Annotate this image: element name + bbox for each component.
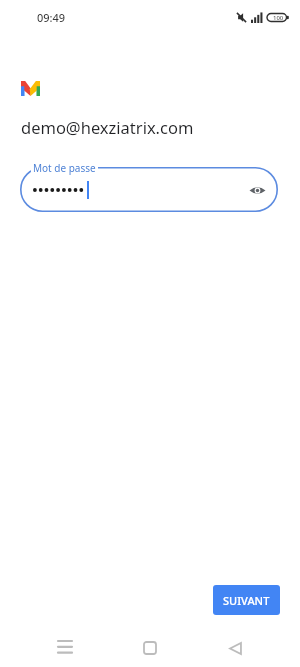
button[interactable]: Accueil [130, 629, 170, 667]
button[interactable]: Retour [215, 629, 255, 667]
button[interactable]: SUIVANT [213, 585, 280, 615]
button[interactable]: Récents [45, 629, 85, 667]
button[interactable]: Afficher le mot de passe [20, 167, 278, 212]
staticText: 09:49 [37, 10, 66, 25]
staticText: demo@hexziatrix.com [21, 116, 194, 138]
staticText: SUIVANT [223, 593, 270, 608]
button[interactable]: Afficher le mot de passe [245, 178, 269, 202]
staticText: 100 [273, 14, 284, 22]
staticText: Mot de passe [33, 161, 96, 175]
